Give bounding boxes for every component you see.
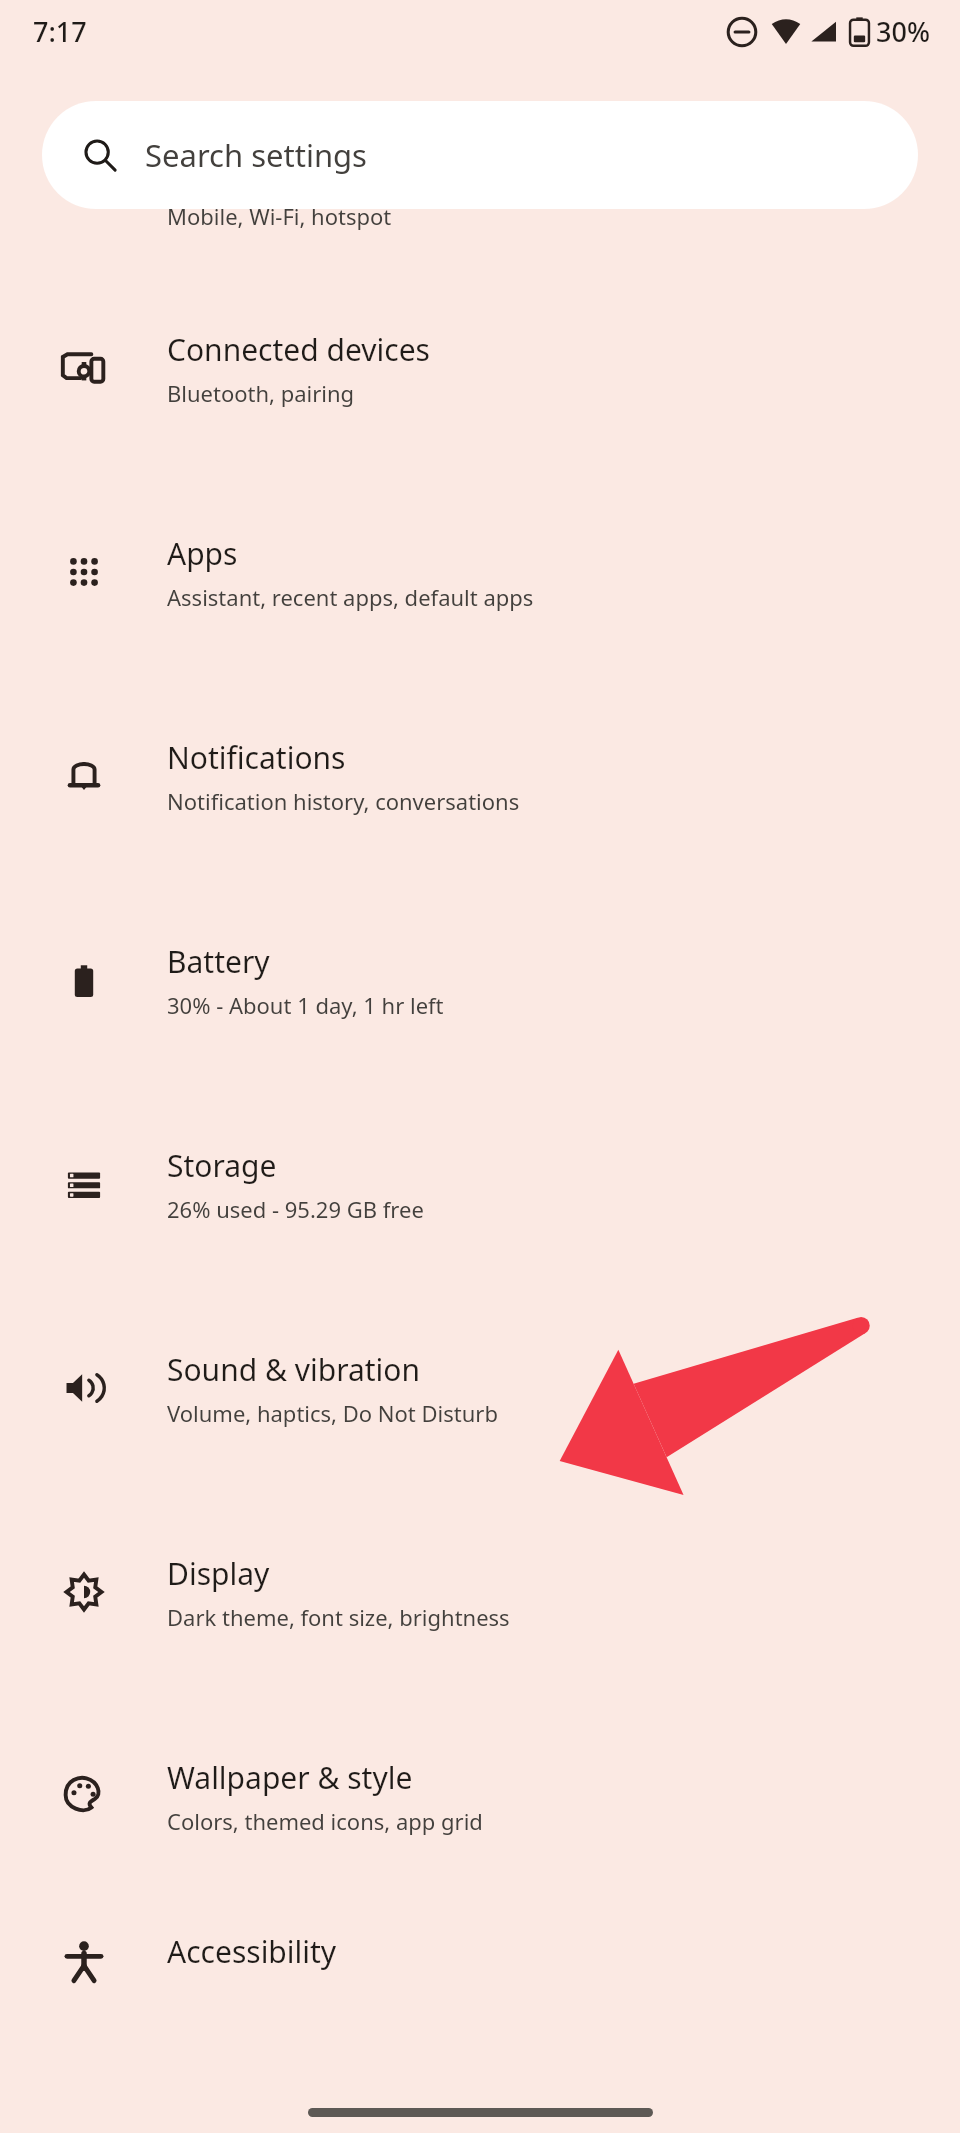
- staticText: Accessibility: [167, 1931, 337, 1972]
- staticText: Sound & vibration: [167, 1349, 421, 1390]
- staticText: Display: [167, 1553, 270, 1594]
- button[interactable]: Wallpaper & style: [0, 1727, 960, 1865]
- staticText: Search settings: [145, 134, 367, 176]
- staticText: Wallpaper & style: [167, 1757, 413, 1798]
- button[interactable]: Mobile, Wi-Fi, hotspot: [0, 219, 960, 271]
- staticText: Volume, haptics, Do Not Disturb: [167, 1398, 498, 1428]
- staticText: Bluetooth, pairing: [167, 378, 355, 408]
- button[interactable]: Sound & vibration: [0, 1319, 960, 1457]
- button[interactable]: Battery: [0, 911, 960, 1049]
- staticText: Storage: [167, 1145, 277, 1186]
- button[interactable]: Search settings: [42, 101, 918, 209]
- staticText: Battery: [167, 941, 270, 982]
- staticText: Apps: [167, 533, 238, 574]
- button[interactable]: Accessibility: [0, 1931, 960, 2061]
- button[interactable]: Display: [0, 1523, 960, 1661]
- staticText: 30%: [876, 13, 930, 50]
- staticText: Connected devices: [167, 329, 430, 370]
- button[interactable]: Connected devices: [0, 299, 960, 437]
- staticText: Colors, themed icons, app grid: [167, 1806, 483, 1836]
- staticText: Mobile, Wi-Fi, hotspot: [167, 201, 392, 231]
- staticText: Assistant, recent apps, default apps: [167, 582, 534, 612]
- staticText: 30% - About 1 day, 1 hr left: [167, 990, 444, 1020]
- staticText: Notifications: [167, 737, 346, 778]
- staticText: 26% used - 95.29 GB free: [167, 1194, 424, 1224]
- button[interactable]: Storage: [0, 1115, 960, 1253]
- staticText: Dark theme, font size, brightness: [167, 1602, 510, 1632]
- staticText: Notification history, conversations: [167, 786, 520, 816]
- button[interactable]: Apps: [0, 503, 960, 641]
- button[interactable]: Notifications: [0, 707, 960, 845]
- staticText: 7:17: [33, 13, 87, 50]
